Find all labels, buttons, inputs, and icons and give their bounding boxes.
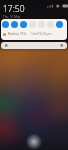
button[interactable]: Mobile data — [20, 21, 29, 28]
button[interactable]: Brightness — [1, 42, 67, 49]
button[interactable]: Location — [56, 21, 65, 28]
staticText: · Until 9:20 pm — [29, 32, 52, 36]
staticText: Thu, 31 May — [3, 15, 21, 19]
button[interactable]: Auto rotate — [29, 21, 38, 28]
button[interactable]: Bluetooth — [11, 21, 20, 28]
staticText: 17:50 — [3, 3, 25, 15]
button[interactable]: Wi-Fi — [2, 21, 11, 28]
button[interactable]: Battery 73% — [3, 31, 67, 37]
staticText: Battery 73% — [8, 32, 27, 36]
button[interactable]: Flashlight — [38, 21, 47, 28]
button[interactable]: Battery saver — [47, 21, 56, 28]
